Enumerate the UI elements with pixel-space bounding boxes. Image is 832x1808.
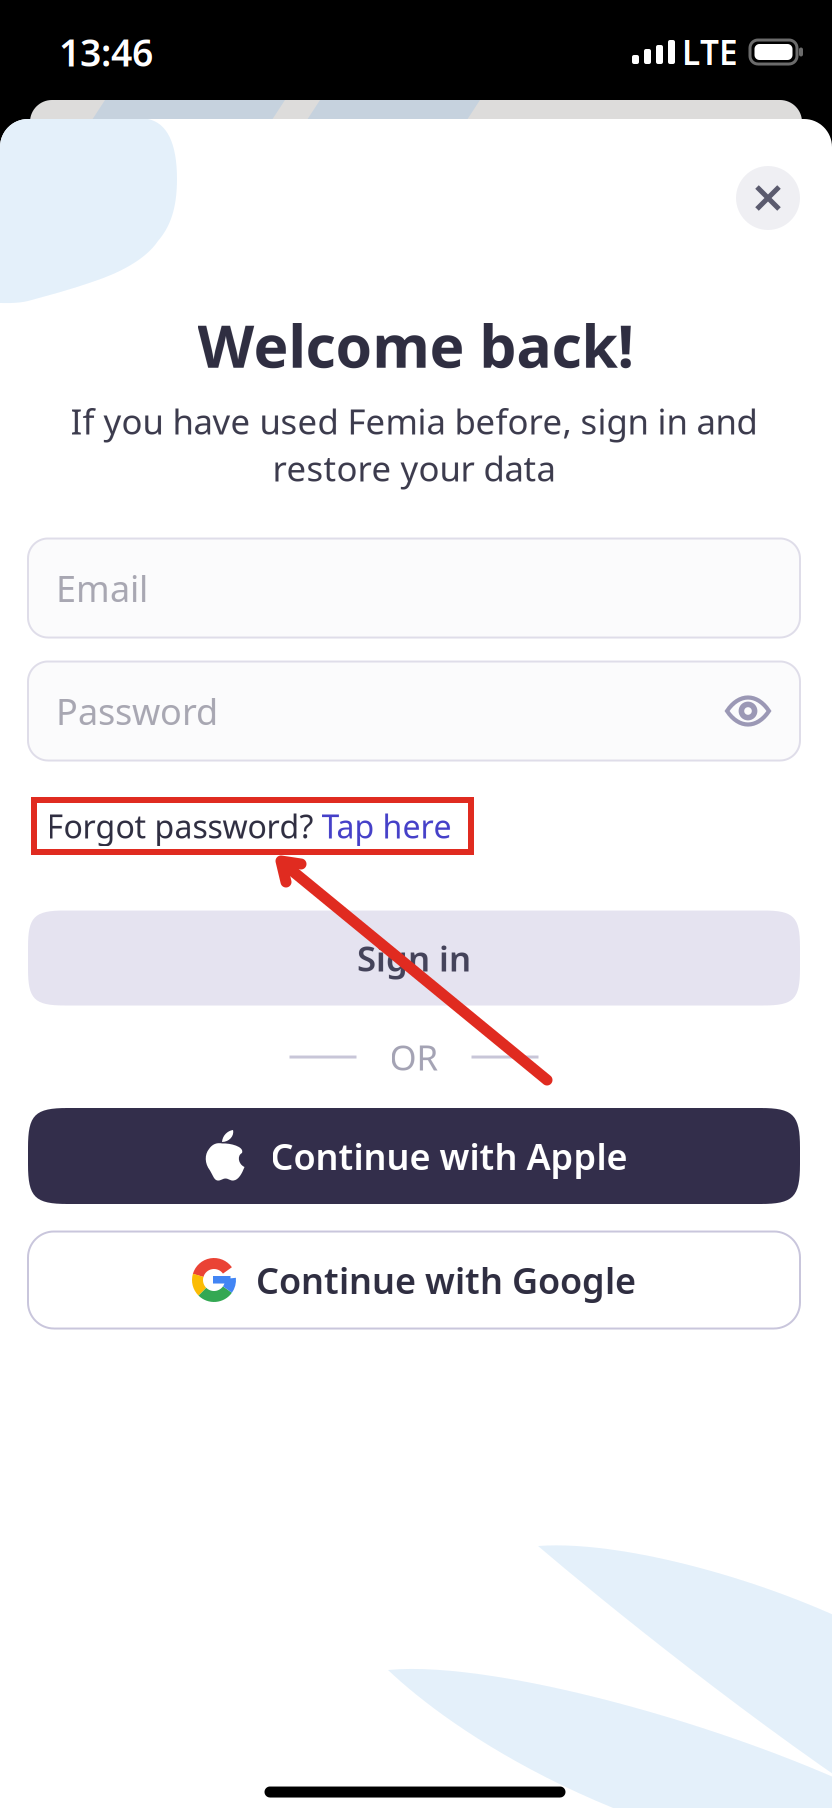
staticText: Welcome back! [197, 306, 634, 384]
button[interactable]: Forgot password? [32, 799, 465, 853]
button[interactable]: Continue with Apple [28, 1108, 800, 1204]
staticText: Continue with Google [256, 1256, 636, 1304]
button[interactable]: Continue with Google [28, 1231, 800, 1328]
button[interactable]: Show password [726, 694, 770, 728]
staticText: Continue with Apple [270, 1132, 627, 1180]
staticText: restore your data [272, 445, 555, 491]
button[interactable]: Sign in [28, 910, 800, 1005]
staticText: 13:46 [59, 27, 153, 77]
button[interactable]: Close [736, 166, 800, 230]
staticText: Sign in [357, 935, 471, 981]
staticText: Forgot password? [46, 805, 321, 847]
staticText: If you have used Femia before, sign in a… [70, 398, 757, 444]
staticText: Email [56, 564, 148, 612]
staticText: Password [56, 687, 218, 735]
staticText: LTE [682, 30, 738, 74]
staticText: Tap here [321, 805, 451, 847]
staticText: OR [389, 1034, 438, 1080]
